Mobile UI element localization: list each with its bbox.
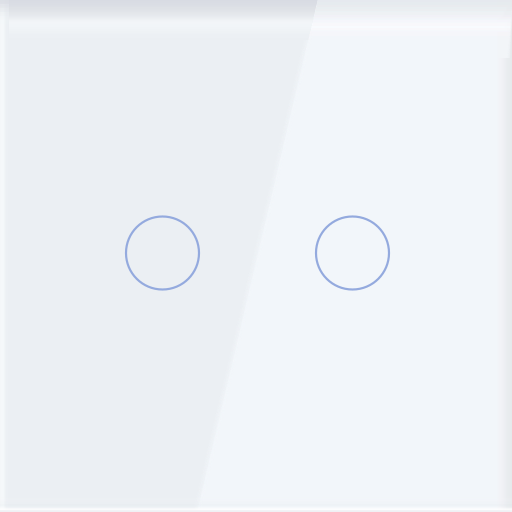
button[interactable]: Left switch — [126, 216, 199, 289]
button[interactable]: Right switch — [316, 216, 389, 289]
